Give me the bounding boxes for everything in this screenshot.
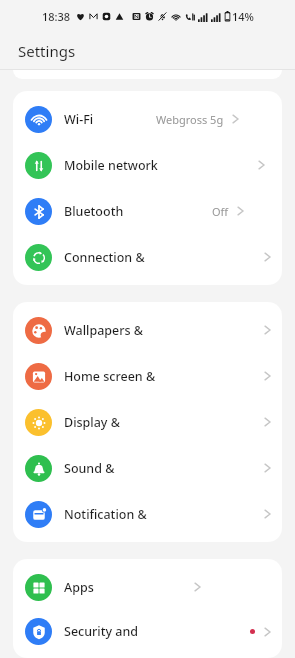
staticText: Wi-Fi bbox=[64, 111, 94, 128]
button[interactable]: Mobile network bbox=[13, 142, 282, 188]
button[interactable]: Sound & vibration bbox=[13, 445, 282, 491]
button[interactable]: Home screen & Lock screen bbox=[13, 353, 282, 399]
staticText: Notification & status bar bbox=[64, 506, 164, 523]
staticText: Display & brightness bbox=[64, 414, 164, 431]
button[interactable]: Display & brightness bbox=[13, 399, 282, 445]
staticText: Mobile network bbox=[64, 157, 158, 174]
staticText: 14% bbox=[232, 9, 254, 24]
staticText: Security and privacy bbox=[64, 623, 157, 640]
staticText: Apps bbox=[64, 579, 94, 596]
button[interactable]: Bluetooth bbox=[13, 188, 282, 234]
staticText: Wallpapers & style bbox=[64, 322, 164, 339]
staticText: 18:38 bbox=[42, 9, 71, 24]
button[interactable]: Connection & sharing bbox=[13, 234, 282, 280]
button[interactable]: Notification & status bar bbox=[13, 491, 282, 537]
staticText: Settings bbox=[18, 41, 76, 61]
staticText: Off bbox=[212, 204, 229, 219]
staticText: Connection & sharing bbox=[64, 249, 164, 266]
button[interactable]: Apps bbox=[13, 564, 282, 610]
staticText: Webgross 5g bbox=[156, 112, 224, 127]
button[interactable]: Wi-Fi bbox=[13, 96, 282, 142]
button[interactable]: Wallpapers & style bbox=[13, 307, 282, 353]
staticText: Bluetooth bbox=[64, 203, 124, 220]
staticText: Sound & vibration bbox=[64, 460, 164, 477]
button[interactable]: Security and privacy bbox=[13, 610, 282, 653]
staticText: Home screen & Lock screen bbox=[64, 368, 164, 385]
